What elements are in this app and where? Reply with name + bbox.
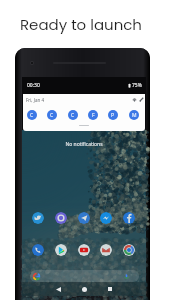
- button[interactable]: [32, 212, 44, 224]
- staticText: F: [92, 112, 95, 119]
- button[interactable]: C: [47, 110, 57, 120]
- button[interactable]: [32, 244, 44, 256]
- button[interactable]: Home: [77, 282, 91, 296]
- button[interactable]: [100, 212, 112, 224]
- button[interactable]: P: [108, 110, 118, 120]
- button[interactable]: Back: [51, 282, 65, 296]
- button[interactable]: C: [27, 110, 37, 120]
- button[interactable]: M: [129, 110, 139, 120]
- button[interactable]: [123, 212, 135, 224]
- button[interactable]: [55, 244, 67, 256]
- other: Wi-Fi: [132, 97, 137, 102]
- button[interactable]: [30, 270, 139, 282]
- button[interactable]: C: [68, 110, 78, 120]
- button[interactable]: Recent apps: [103, 282, 117, 296]
- staticText: No notifications: [22, 141, 146, 148]
- staticText: M: [132, 112, 137, 119]
- staticText: Fri, Jan 4: [26, 97, 45, 103]
- staticText: Ready to launch: [20, 14, 142, 35]
- button[interactable]: F: [88, 110, 98, 120]
- button[interactable]: [55, 212, 67, 224]
- button[interactable]: [78, 212, 90, 224]
- staticText: 00:30: [27, 82, 40, 89]
- button[interactable]: [78, 244, 90, 256]
- other: Edit: [139, 97, 144, 102]
- staticText: C: [71, 112, 75, 119]
- staticText: P: [111, 112, 115, 119]
- button[interactable]: [123, 244, 135, 256]
- button[interactable]: [100, 244, 112, 256]
- staticText: C: [30, 112, 34, 119]
- staticText: C: [50, 112, 54, 119]
- staticText: 75%: [132, 82, 142, 89]
